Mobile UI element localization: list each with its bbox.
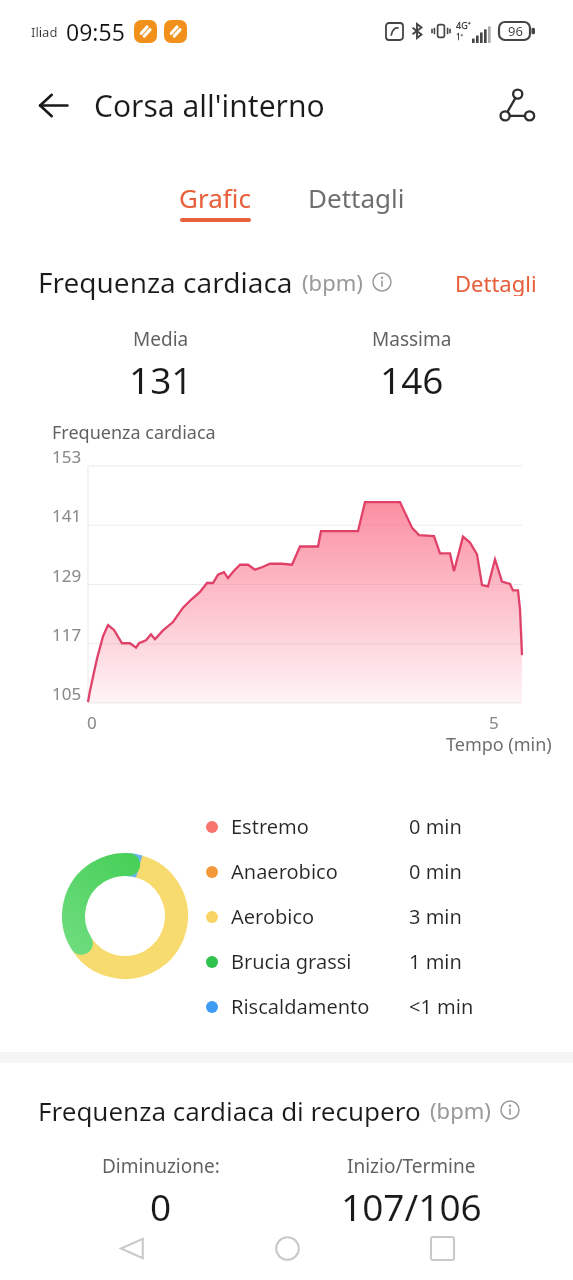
staticText: (bpm) [430,1095,491,1125]
staticText: 105 [52,682,82,705]
staticText: 3 min [409,903,462,930]
staticText: 117 [52,623,82,646]
staticText: Tempo (min) [446,732,552,757]
button[interactable]: Back [107,1224,155,1272]
staticText: Massima [372,326,452,352]
staticText: 0 min [409,813,462,840]
button[interactable]: Recents [418,1224,466,1272]
button[interactable]: Share [492,81,540,129]
staticText: 107/106 [341,1181,482,1231]
button[interactable]: Dettagli [286,168,427,227]
staticText: 0 min [409,858,462,885]
staticText: Dettagli [455,268,537,296]
staticText: <1 min [409,993,474,1020]
staticText: Frequenza cardiaca di recupero [38,1093,421,1128]
button[interactable]: Dettagli [451,262,541,302]
staticText: Iliad [31,23,58,41]
button[interactable]: Back [28,80,78,130]
staticText: Aerobico [231,903,315,930]
staticText: Frequenza cardiaca [52,420,216,445]
button[interactable]: Home [263,1224,311,1272]
staticText: 4G⁺ [456,19,471,31]
staticText: 1 min [409,948,462,975]
staticText: Media [133,326,189,352]
staticText: Grafic [179,180,251,215]
staticText: Brucia grassi [231,948,352,975]
staticText: Anaerobico [231,858,338,885]
staticText: 5 [489,711,499,734]
staticText: 141 [52,504,82,527]
staticText: Corsa all'interno [94,85,325,126]
staticText: 131 [129,354,193,404]
staticText: 1⁺ [456,31,464,42]
staticText: 129 [52,564,82,587]
staticText: 153 [52,445,82,468]
staticText: 0 [150,1181,172,1231]
staticText: Frequenza cardiaca [38,263,293,301]
staticText: (bpm) [302,267,363,297]
staticText: Estremo [231,813,309,840]
button[interactable]: Grafic [157,168,273,234]
staticText: 09:55 [66,16,125,47]
staticText: Inizio/Termine [347,1153,476,1179]
staticText: 0 [87,711,97,734]
staticText: Riscaldamento [231,993,370,1020]
staticText: Dettagli [308,180,405,215]
staticText: Diminuzione: [102,1153,220,1179]
staticText: 146 [380,354,444,404]
staticText: 96 [508,22,523,40]
